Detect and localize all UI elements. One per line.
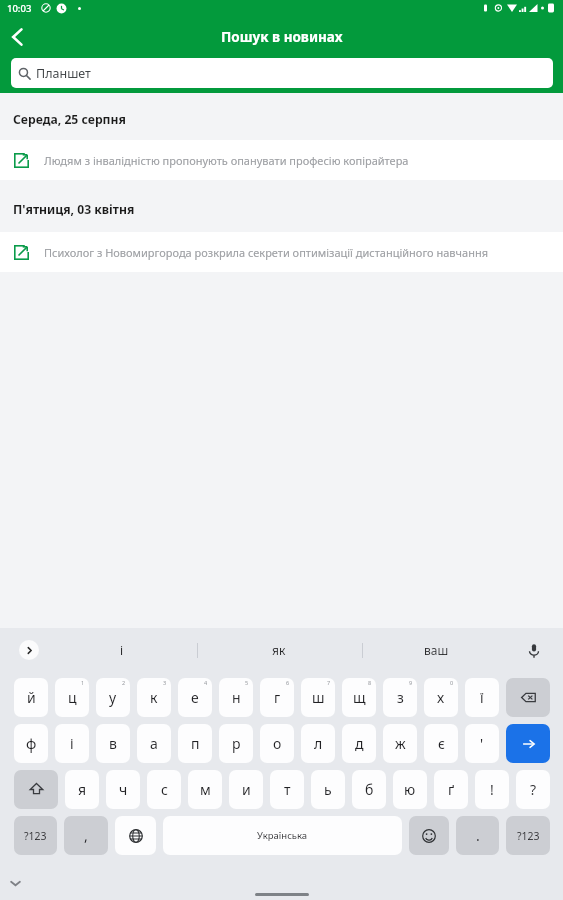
staticText: 3 xyxy=(163,679,167,686)
button[interactable]: ц xyxy=(55,678,89,717)
button[interactable]: Психолог з Новомиргорода розкрила секрет… xyxy=(0,232,563,272)
button[interactable]: Voice input xyxy=(521,638,547,664)
staticText: ч xyxy=(119,780,128,799)
button[interactable]: Show more suggestions xyxy=(19,640,39,660)
button[interactable]: ґ xyxy=(434,770,468,809)
staticText: 0 xyxy=(450,679,454,686)
button[interactable]: у xyxy=(96,678,130,717)
staticText: р xyxy=(232,734,241,753)
button[interactable]: Search xyxy=(506,724,550,763)
staticText: н xyxy=(232,688,241,707)
button[interactable]: і xyxy=(88,636,156,664)
staticText: ь xyxy=(324,780,332,799)
button[interactable]: ж xyxy=(383,724,417,763)
button[interactable]: м xyxy=(188,770,222,809)
button[interactable]: г xyxy=(260,678,294,717)
button[interactable]: і xyxy=(55,724,89,763)
staticText: щ xyxy=(353,688,366,707)
button[interactable]: як xyxy=(245,636,313,664)
button[interactable]: е xyxy=(178,678,212,717)
staticText: й xyxy=(27,688,36,707)
button[interactable]: б xyxy=(352,770,386,809)
button[interactable]: ваш xyxy=(402,636,470,664)
button[interactable]: Shift xyxy=(14,770,58,809)
staticText: 8 xyxy=(368,679,372,686)
button[interactable]: ю xyxy=(393,770,427,809)
staticText: к xyxy=(150,688,158,707)
staticText: п xyxy=(191,734,200,753)
button[interactable]: Back xyxy=(0,17,42,57)
button[interactable]: к xyxy=(137,678,171,717)
button[interactable]: , xyxy=(64,816,108,855)
staticText: 10:03 xyxy=(7,2,32,15)
button[interactable]: Emoji xyxy=(409,816,449,855)
button[interactable]: . xyxy=(456,816,499,855)
staticText: Українська xyxy=(257,829,308,842)
button[interactable]: я xyxy=(65,770,99,809)
staticText: д xyxy=(355,734,364,753)
button[interactable]: Change language xyxy=(115,816,156,855)
button[interactable]: Українська xyxy=(163,816,402,855)
button[interactable]: й xyxy=(14,678,48,717)
button[interactable]: з xyxy=(383,678,417,717)
button[interactable]: ?123 xyxy=(14,816,57,855)
staticText: 2 xyxy=(122,679,126,686)
staticText: я xyxy=(78,780,87,799)
button[interactable]: Hide keyboard xyxy=(4,872,26,894)
button[interactable]: ь xyxy=(311,770,345,809)
button[interactable]: Backspace xyxy=(506,678,550,717)
staticText: і xyxy=(120,642,124,658)
button[interactable]: ?123 xyxy=(506,816,550,855)
staticText: і xyxy=(70,734,74,753)
staticText: е xyxy=(191,688,199,707)
button[interactable]: в xyxy=(96,724,130,763)
staticText: и xyxy=(242,780,251,799)
button[interactable]: ш xyxy=(301,678,335,717)
button[interactable]: д xyxy=(342,724,376,763)
staticText: г xyxy=(274,688,281,707)
button[interactable]: л xyxy=(301,724,335,763)
staticText: 1 xyxy=(81,679,85,686)
staticText: м xyxy=(200,780,211,799)
button[interactable]: н xyxy=(219,678,253,717)
staticText: є xyxy=(438,734,445,753)
button[interactable]: а xyxy=(137,724,171,763)
button[interactable]: с xyxy=(147,770,181,809)
staticText: ?123 xyxy=(517,829,540,843)
button[interactable]: о xyxy=(260,724,294,763)
button[interactable]: ' xyxy=(465,724,499,763)
button[interactable]: п xyxy=(178,724,212,763)
button[interactable]: р xyxy=(219,724,253,763)
staticText: л xyxy=(314,734,323,753)
button[interactable]: ф xyxy=(14,724,48,763)
staticText: у xyxy=(109,688,117,707)
staticText: х xyxy=(437,688,445,707)
button[interactable]: ? xyxy=(516,770,550,809)
button[interactable]: Людям з інвалідністю пропонують опануват… xyxy=(0,140,563,180)
button[interactable]: Планшет xyxy=(11,58,553,88)
button[interactable]: и xyxy=(229,770,263,809)
staticText: з xyxy=(397,688,404,707)
button[interactable]: т xyxy=(270,770,304,809)
staticText: ж xyxy=(395,734,406,753)
staticText: 6 xyxy=(286,679,290,686)
staticText: т xyxy=(284,780,291,799)
staticText: ваш xyxy=(424,642,449,658)
staticText: 9 xyxy=(409,679,413,686)
staticText: як xyxy=(272,642,286,658)
staticText: Середа, 25 серпня xyxy=(13,111,126,128)
staticText: Планшет xyxy=(36,65,91,82)
staticText: 4 xyxy=(204,679,208,686)
staticText: ' xyxy=(480,734,484,753)
staticText: , xyxy=(84,826,88,845)
button[interactable]: ї xyxy=(465,678,499,717)
button[interactable]: є xyxy=(424,724,458,763)
button[interactable]: х xyxy=(424,678,458,717)
staticText: о xyxy=(273,734,282,753)
staticText: ш xyxy=(312,688,325,707)
button[interactable]: ! xyxy=(475,770,509,809)
staticText: ю xyxy=(404,780,416,799)
button[interactable]: щ xyxy=(342,678,376,717)
button[interactable]: ч xyxy=(106,770,140,809)
staticText: ф xyxy=(26,734,37,753)
